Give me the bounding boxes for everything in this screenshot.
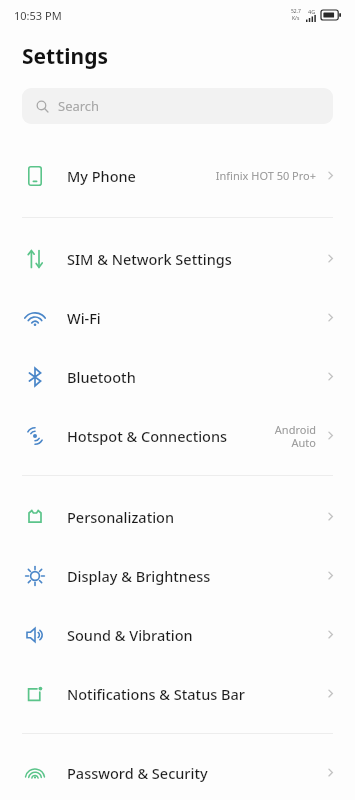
button[interactable]: Sound & Vibration xyxy=(0,605,355,664)
staticText: K/s xyxy=(292,15,300,22)
button[interactable]: Hotspot & Connections xyxy=(0,406,355,465)
button[interactable]: Personalization xyxy=(0,487,355,546)
staticText: Infinix HOT 50 Pro+ xyxy=(215,168,316,183)
button[interactable]: Wi-Fi xyxy=(0,288,355,347)
staticText: 10:53 PM xyxy=(14,8,62,23)
staticText: Settings xyxy=(22,42,109,71)
staticText: 4G xyxy=(308,8,316,15)
staticText: 52.7 xyxy=(291,8,301,15)
staticText: SIM & Network Settings xyxy=(67,249,232,269)
staticText: Bluetooth xyxy=(67,367,136,387)
staticText: Personalization xyxy=(67,507,175,527)
staticText: Android Auto xyxy=(274,422,316,450)
button[interactable]: Search xyxy=(22,88,333,124)
button[interactable]: Password & Security xyxy=(0,745,355,800)
staticText: My Phone xyxy=(67,166,136,186)
staticText: Wi-Fi xyxy=(67,308,101,328)
button[interactable]: Notifications & Status Bar xyxy=(0,664,355,723)
staticText: Notifications & Status Bar xyxy=(67,684,245,704)
button[interactable]: SIM & Network Settings xyxy=(0,229,355,288)
staticText: Hotspot & Connections xyxy=(67,426,228,446)
button[interactable]: Display & Brightness xyxy=(0,546,355,605)
staticText: Display & Brightness xyxy=(67,566,211,586)
staticText: Sound & Vibration xyxy=(67,625,193,645)
button[interactable]: Bluetooth xyxy=(0,347,355,406)
staticText: Password & Security xyxy=(67,763,208,783)
button[interactable]: My Phone xyxy=(0,146,355,205)
staticText: Search xyxy=(58,97,100,115)
